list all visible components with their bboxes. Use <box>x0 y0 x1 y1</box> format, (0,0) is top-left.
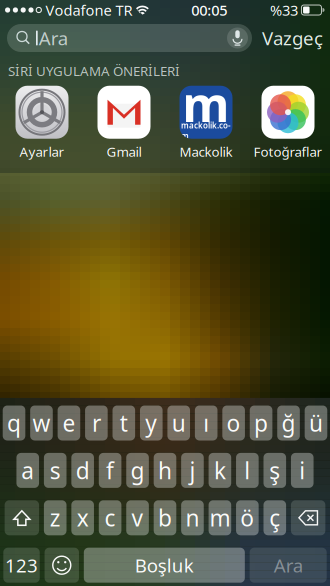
staticText: s <box>50 455 61 485</box>
button[interactable]: k <box>209 453 231 488</box>
staticText: d <box>76 455 90 485</box>
staticText: j <box>189 455 195 485</box>
button[interactable]: d <box>71 453 94 488</box>
button[interactable]: a <box>16 453 39 488</box>
button[interactable]: ğ <box>277 405 300 440</box>
staticText: u <box>172 408 186 438</box>
staticText: w <box>32 408 50 438</box>
staticText: e <box>62 408 75 438</box>
staticText: r <box>92 408 101 438</box>
staticText: z <box>50 503 61 533</box>
staticText: Ara <box>39 26 68 50</box>
staticText: ş <box>269 455 280 485</box>
button[interactable]: r <box>85 405 108 440</box>
staticText: a <box>21 455 34 485</box>
button[interactable]: t <box>112 405 135 440</box>
staticText: o <box>227 408 241 438</box>
button[interactable]: g <box>126 453 149 488</box>
button[interactable]: u <box>167 405 190 440</box>
button[interactable]: Gmail <box>83 86 165 160</box>
staticText: v <box>132 503 144 533</box>
button[interactable]: Ayarlar <box>1 86 83 160</box>
staticText: Boşluk <box>135 553 194 578</box>
button[interactable]: Fotoğraflar <box>247 86 329 160</box>
button[interactable]: o <box>222 405 245 440</box>
staticText: SİRİ UYGULAMA ÖNERİLERİ <box>8 62 180 80</box>
button[interactable]: h <box>154 453 176 488</box>
staticText: k <box>214 455 226 485</box>
staticText: h <box>158 455 172 485</box>
button[interactable]: s <box>44 453 66 488</box>
staticText: b <box>158 503 172 533</box>
staticText: ç <box>269 503 280 533</box>
button[interactable]: Emoji <box>45 548 79 583</box>
button[interactable]: z <box>44 500 66 535</box>
button[interactable]: l <box>236 453 259 488</box>
button[interactable]: c <box>99 500 121 535</box>
button[interactable]: w <box>30 405 53 440</box>
staticText: 123 <box>5 553 38 578</box>
button[interactable]: i <box>291 453 313 488</box>
button[interactable]: x <box>71 500 94 535</box>
button[interactable]: ş <box>263 453 286 488</box>
staticText: l <box>244 455 250 485</box>
staticText: n <box>185 503 199 533</box>
button[interactable]: ö <box>236 500 259 535</box>
button[interactable]: Vazgeç <box>252 24 330 52</box>
staticText: Vodafone TR <box>45 0 132 20</box>
button[interactable]: e <box>58 405 80 440</box>
staticText: ı <box>203 408 209 438</box>
staticText: Vazgeç <box>262 26 323 50</box>
button[interactable]: ç <box>263 500 286 535</box>
button[interactable]: ı <box>195 405 217 440</box>
staticText: q <box>7 408 21 438</box>
button[interactable]: v <box>126 500 149 535</box>
staticText: Ayarlar <box>19 143 64 160</box>
button[interactable]: p <box>250 405 272 440</box>
button[interactable]: m <box>209 500 231 535</box>
button[interactable]: n <box>181 500 204 535</box>
staticText: p <box>254 408 268 438</box>
button[interactable]: Numbers <box>3 548 40 583</box>
staticText: mackolik.com <box>181 120 231 141</box>
staticText: Fotoğraflar <box>253 143 322 160</box>
staticText: y <box>145 408 157 438</box>
button[interactable]: b <box>154 500 176 535</box>
staticText: i <box>299 455 305 485</box>
staticText: Ara <box>274 553 303 578</box>
button[interactable]: f <box>99 453 121 488</box>
button[interactable]: j <box>181 453 204 488</box>
staticText: 00:05 <box>191 0 227 20</box>
staticText: ö <box>240 503 254 533</box>
button[interactable]: q <box>3 405 25 440</box>
staticText: Mackolik <box>179 143 232 160</box>
button[interactable]: Shift <box>5 500 39 535</box>
staticText: Gmail <box>106 143 141 160</box>
button[interactable]: Ara <box>7 24 252 52</box>
staticText: m <box>182 72 229 135</box>
staticText: ğ <box>281 408 295 438</box>
staticText: c <box>105 503 116 533</box>
button[interactable]: Boşluk <box>84 548 245 583</box>
button[interactable]: m <box>165 86 247 160</box>
staticText: m <box>209 503 230 533</box>
button[interactable]: y <box>140 405 163 440</box>
button[interactable]: Ara <box>250 548 327 583</box>
button[interactable]: Delete <box>291 500 325 535</box>
staticText: %33 <box>270 0 298 20</box>
staticText: ü <box>309 408 323 438</box>
staticText: f <box>106 455 114 485</box>
staticText: g <box>131 455 145 485</box>
staticText: x <box>77 503 89 533</box>
staticText: t <box>120 408 128 438</box>
button[interactable]: ü <box>305 405 327 440</box>
